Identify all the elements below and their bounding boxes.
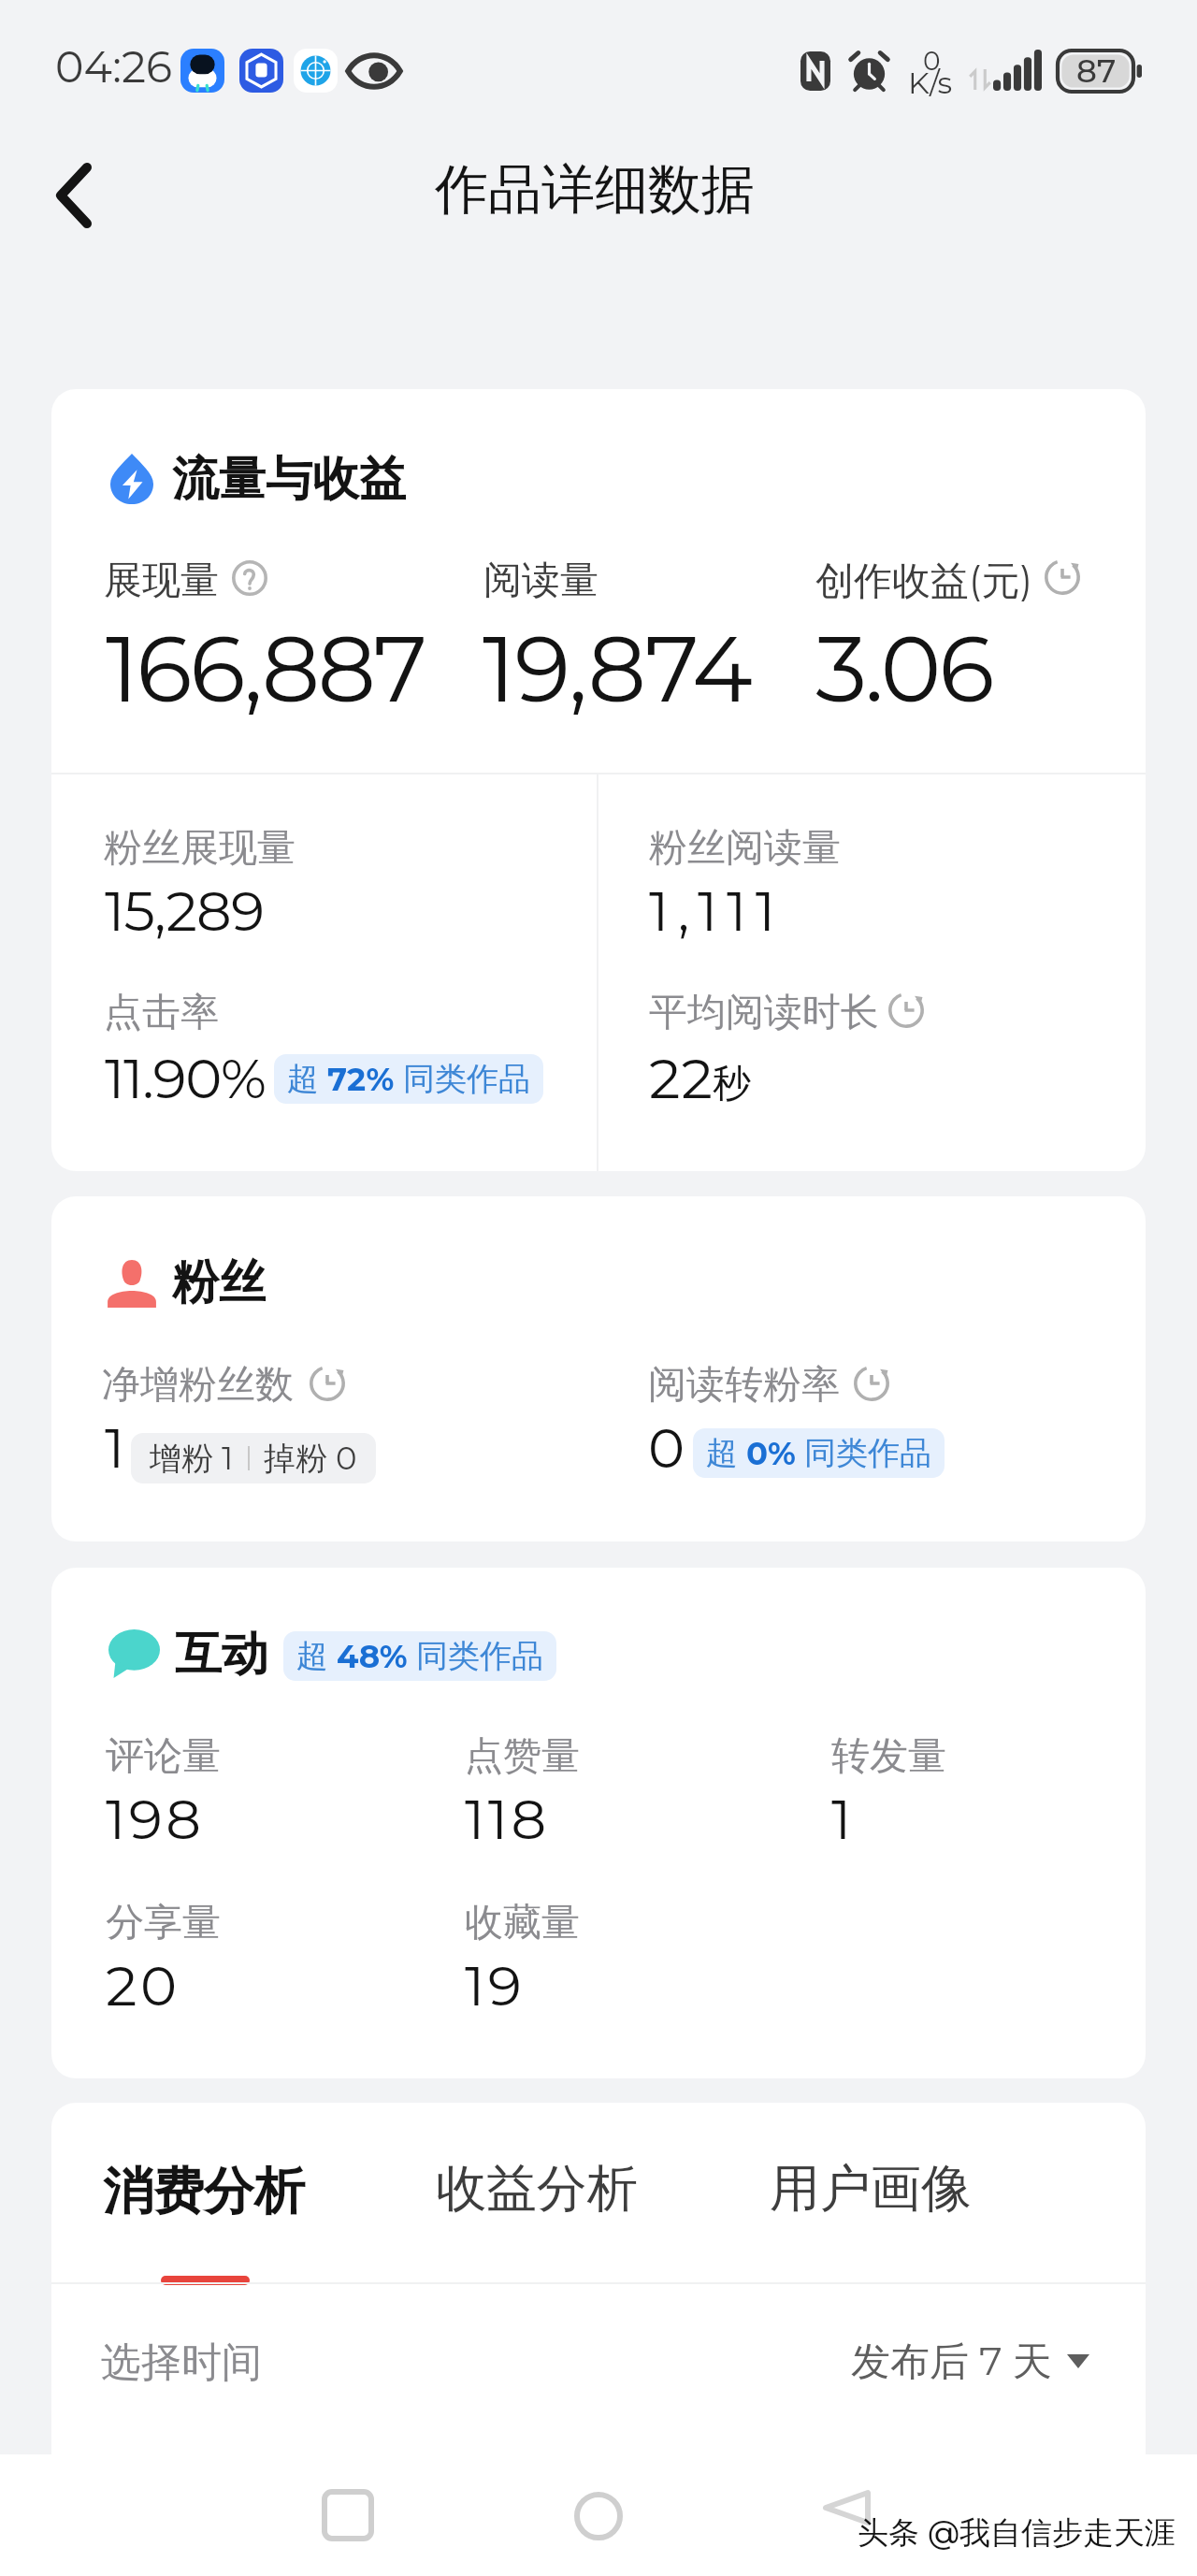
staticText: 粉丝: [172, 1253, 266, 1312]
staticText: 粉丝阅读量: [649, 824, 841, 873]
button[interactable]: Home: [560, 2468, 635, 2543]
staticText: 分享量: [106, 1899, 221, 1947]
button[interactable]: Back: [809, 2467, 884, 2541]
staticText: 0%: [746, 1434, 796, 1472]
staticText: 20: [106, 1952, 180, 2019]
staticText: 转发量: [831, 1732, 946, 1781]
staticText: 超: [287, 1059, 327, 1099]
staticText: 流量与收益: [172, 450, 406, 509]
button[interactable]: 发布后 7 天: [851, 2337, 1089, 2386]
staticText: 11.90%: [105, 1045, 266, 1112]
staticText: 19: [465, 1952, 526, 2019]
staticText: 收益分析: [436, 2157, 638, 2221]
staticText: 展现量: [104, 557, 219, 605]
staticText: 点赞量: [465, 1732, 580, 1781]
staticText: 48%: [337, 1637, 408, 1675]
staticText: K/s: [908, 65, 953, 101]
staticText: 15,289: [105, 877, 265, 945]
staticText: 秒: [713, 1060, 751, 1108]
staticText: 评论量: [106, 1732, 221, 1781]
staticText: 平均阅读时长: [649, 989, 879, 1037]
button[interactable]: 消费分析: [90, 2140, 324, 2280]
staticText: 87: [1076, 51, 1117, 90]
staticText: 超: [706, 1433, 746, 1473]
staticText: 作品详细数据: [435, 156, 755, 224]
staticText: 0: [923, 45, 941, 77]
staticText: 掉粉 0: [264, 1439, 357, 1479]
staticText: 同类作品: [395, 1059, 530, 1099]
staticText: 118: [465, 1786, 550, 1853]
staticText: 阅读转粉率: [648, 1361, 840, 1410]
staticText: 创作收益(元): [815, 557, 1032, 605]
staticText: 3.06: [815, 613, 992, 724]
staticText: 72%: [327, 1060, 395, 1098]
staticText: 1: [831, 1786, 855, 1853]
staticText: 消费分析: [103, 2160, 305, 2223]
staticText: 166,887: [106, 613, 425, 724]
staticText: 0: [648, 1414, 685, 1482]
staticText: 收藏量: [465, 1899, 580, 1947]
staticText: 选择时间: [101, 2337, 262, 2388]
button[interactable]: Recent apps: [310, 2468, 385, 2543]
staticText: 增粉 1: [150, 1439, 234, 1479]
button[interactable]: Back: [22, 134, 125, 265]
staticText: 超: [296, 1636, 337, 1676]
staticText: 19,874: [483, 613, 752, 724]
staticText: 点击率: [104, 989, 219, 1037]
staticText: 22: [649, 1045, 714, 1112]
staticText: 1: [105, 1414, 125, 1482]
button[interactable]: 用户画像: [757, 2140, 990, 2280]
staticText: 同类作品: [408, 1636, 543, 1676]
staticText: 同类作品: [796, 1433, 931, 1473]
staticText: 发布后 7 天: [851, 2337, 1052, 2386]
staticText: 互动: [175, 1625, 268, 1684]
staticText: 198: [106, 1786, 205, 1853]
staticText: 1,111: [649, 877, 785, 945]
staticText: 粉丝展现量: [104, 824, 296, 873]
staticText: 04:26: [55, 40, 172, 93]
staticText: 阅读量: [483, 557, 598, 605]
button[interactable]: 收益分析: [423, 2140, 656, 2280]
staticText: 用户画像: [770, 2157, 972, 2221]
staticText: 净增粉丝数: [102, 1361, 294, 1410]
staticText: 头条 @我自信步走天涯: [858, 2513, 1175, 2553]
